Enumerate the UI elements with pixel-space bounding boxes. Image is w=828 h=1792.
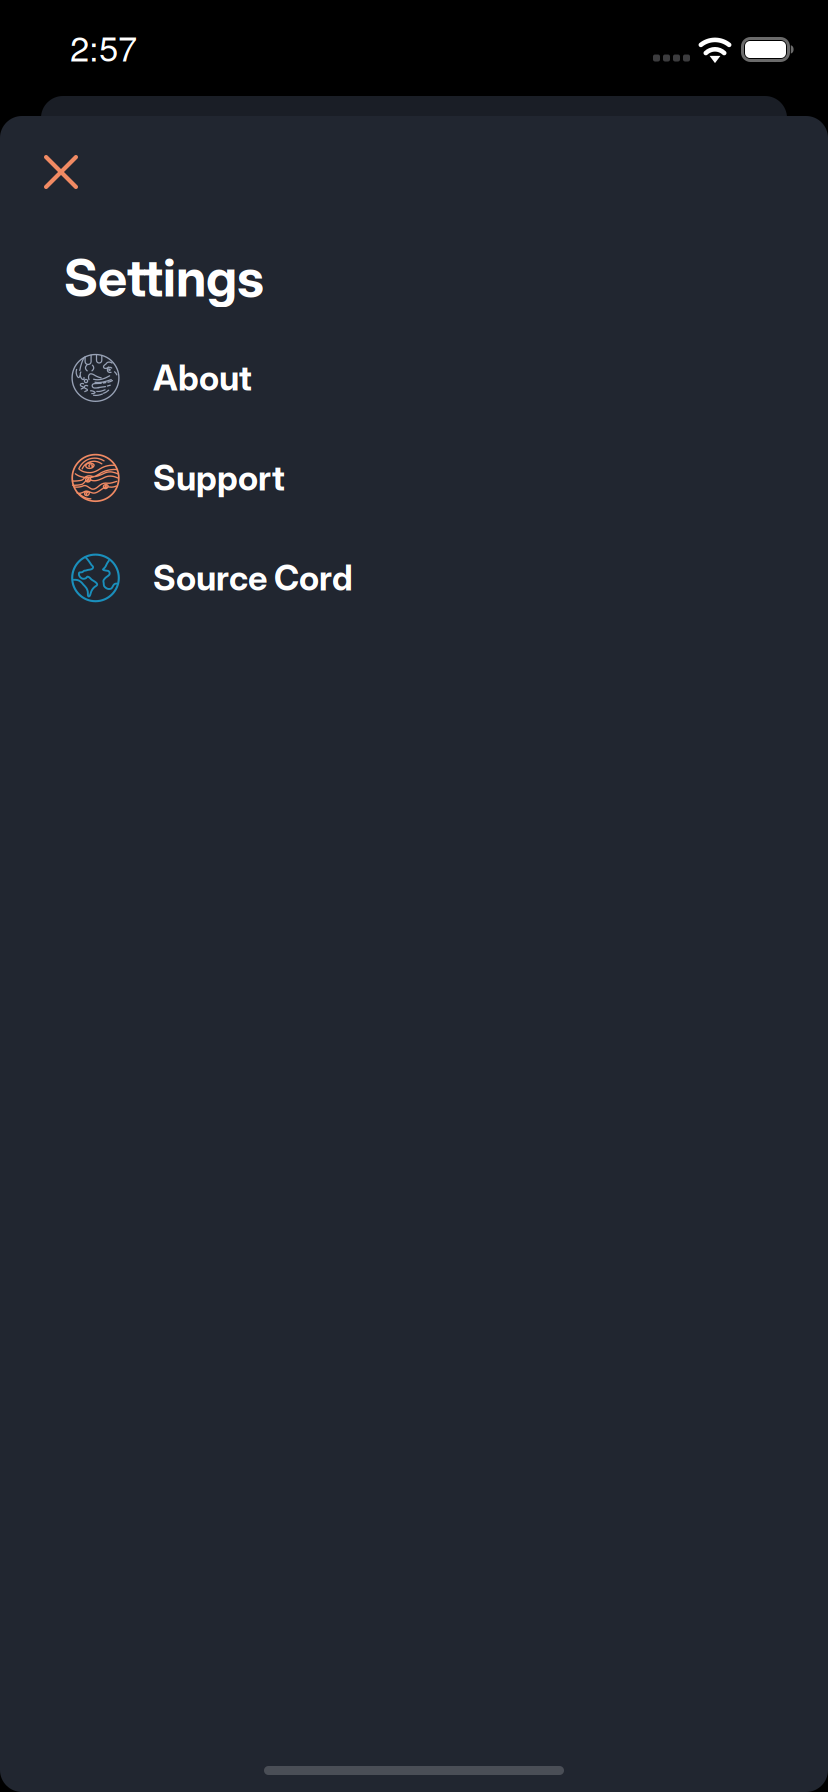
button[interactable]: About (0, 328, 828, 428)
staticText: 2:57 (70, 22, 137, 71)
button[interactable]: Source Cord (0, 528, 828, 628)
staticText: Support (153, 457, 285, 499)
staticText: Settings (64, 246, 264, 309)
button[interactable]: Close (36, 147, 86, 197)
button[interactable]: Support (0, 428, 828, 528)
staticText: About (153, 357, 252, 399)
staticText: Source Cord (153, 557, 353, 599)
